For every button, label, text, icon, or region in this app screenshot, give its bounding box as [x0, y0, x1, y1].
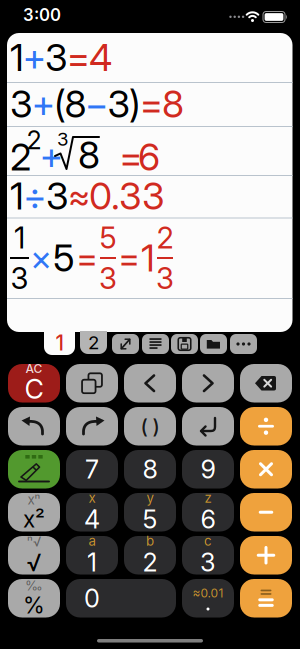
staticText: xⁿ: [27, 491, 40, 508]
button[interactable]: Undo: [8, 407, 60, 445]
button[interactable]: Layout: [142, 334, 169, 354]
staticText: 1: [141, 235, 155, 281]
staticText: =: [118, 237, 140, 279]
staticText: √: [26, 548, 41, 577]
staticText: 6: [138, 134, 160, 180]
button[interactable]: Equals: [240, 579, 292, 617]
staticText: 0.33: [89, 173, 165, 219]
staticText: 2: [26, 125, 41, 155]
staticText: 2: [10, 134, 31, 180]
staticText: 8: [142, 454, 157, 485]
button[interactable]: a: [66, 533, 118, 578]
button[interactable]: y: [124, 490, 176, 535]
button[interactable]: 0: [66, 579, 176, 617]
button[interactable]: Decimal point: [182, 579, 234, 617]
staticText: ‰: [25, 577, 43, 594]
staticText: 2: [142, 547, 157, 578]
staticText: 0: [84, 583, 100, 614]
button[interactable]: Divide: [240, 407, 292, 445]
button[interactable]: xⁿ: [8, 491, 60, 533]
staticText: 7: [85, 454, 99, 485]
staticText: 5: [142, 504, 157, 535]
staticText: 3: [99, 260, 117, 296]
staticText: =: [119, 134, 143, 180]
staticText: ⁿ√: [27, 534, 41, 550]
staticText: 3: [200, 547, 216, 578]
staticText: 6: [200, 504, 215, 535]
staticText: z: [204, 490, 211, 506]
button[interactable]: Move left: [124, 364, 176, 402]
staticText: x²: [23, 506, 45, 533]
staticText: 5: [53, 235, 75, 281]
staticText: 1: [10, 35, 24, 80]
button[interactable]: Expand: [112, 334, 139, 354]
staticText: y: [146, 490, 153, 506]
staticText: ): [129, 81, 141, 127]
staticText: ÷: [23, 173, 47, 219]
button[interactable]: z: [182, 490, 234, 535]
button[interactable]: c: [182, 533, 234, 578]
staticText: 4: [89, 35, 112, 80]
staticText: =: [66, 35, 90, 80]
staticText: %: [23, 592, 45, 619]
staticText: 1: [87, 547, 97, 578]
staticText: 1: [10, 173, 24, 219]
button[interactable]: 1: [44, 330, 75, 355]
staticText: 1: [14, 220, 25, 255]
staticText: 8: [64, 81, 86, 127]
button[interactable]: Redo: [66, 407, 118, 445]
button[interactable]: ⁿ√: [8, 534, 60, 577]
button[interactable]: 2: [80, 331, 107, 354]
staticText: (: [54, 81, 66, 127]
button[interactable]: Return: [182, 407, 234, 445]
staticText: ≈: [68, 175, 90, 217]
button[interactable]: ‰: [8, 577, 60, 619]
button[interactable]: 7: [66, 450, 118, 488]
button[interactable]: Clear: [8, 361, 60, 405]
staticText: +: [31, 81, 55, 127]
staticText: ): [152, 414, 159, 438]
staticText: =: [76, 237, 98, 279]
staticText: 3: [45, 35, 68, 80]
button[interactable]: Open: [200, 334, 227, 354]
button[interactable]: 8: [124, 450, 176, 488]
staticText: 2: [88, 331, 99, 354]
staticText: 3: [156, 260, 174, 296]
staticText: 5: [99, 220, 116, 255]
staticText: 2: [156, 220, 173, 255]
staticText: 8: [162, 81, 184, 127]
button[interactable]: Save: [171, 334, 198, 354]
button[interactable]: Plus: [240, 536, 292, 574]
staticText: 3: [46, 173, 69, 219]
staticText: AC: [25, 361, 42, 376]
button[interactable]: Parentheses: [124, 407, 176, 445]
staticText: −: [85, 81, 109, 127]
staticText: 3: [107, 81, 130, 127]
button[interactable]: More: [230, 334, 257, 354]
staticText: =: [139, 81, 163, 127]
button[interactable]: b: [124, 533, 176, 578]
button[interactable]: Delete: [240, 364, 292, 402]
staticText: 3: [10, 81, 33, 127]
staticText: ×: [30, 237, 52, 279]
button[interactable]: Move right: [182, 364, 234, 402]
button[interactable]: Copy: [66, 364, 118, 402]
staticText: 8: [78, 132, 100, 178]
staticText: +: [22, 35, 46, 80]
staticText: c: [204, 533, 212, 549]
button[interactable]: Multiply: [240, 450, 292, 488]
button[interactable]: Minus: [240, 493, 292, 531]
staticText: 3: [57, 128, 69, 150]
staticText: 4: [84, 504, 100, 535]
staticText: b: [146, 533, 154, 549]
staticText: 1: [55, 330, 63, 355]
button[interactable]: x: [66, 490, 118, 535]
staticText: C: [24, 373, 43, 405]
button[interactable]: Handwriting: [8, 450, 60, 488]
staticText: x: [88, 490, 95, 506]
staticText: +: [39, 133, 63, 179]
staticText: (: [140, 414, 147, 438]
staticText: ≈0.01: [192, 586, 223, 600]
button[interactable]: 9: [182, 450, 234, 488]
staticText: 9: [200, 454, 215, 485]
